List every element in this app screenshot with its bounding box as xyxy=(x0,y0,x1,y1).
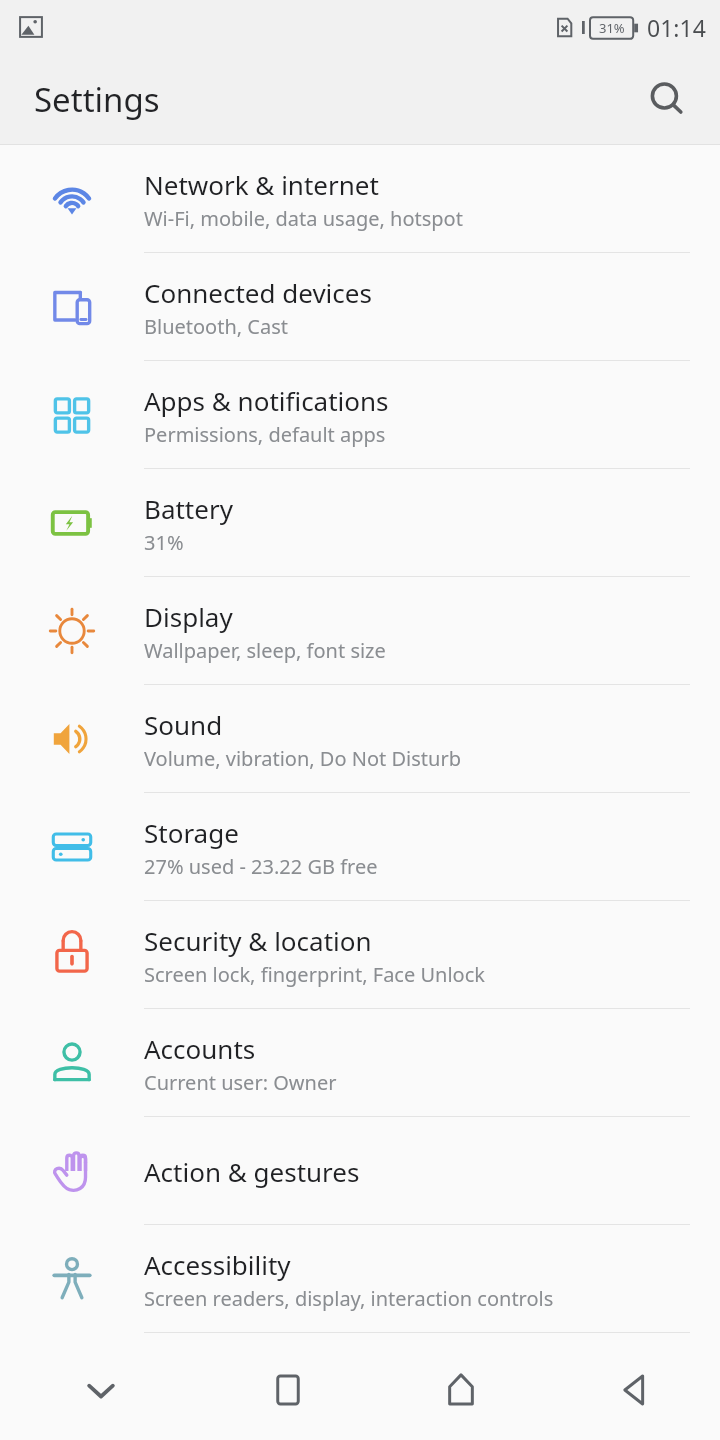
staticText: 31% xyxy=(144,529,184,556)
button[interactable]: Battery xyxy=(0,469,720,577)
staticText: 27% used - 23.22 GB free xyxy=(144,853,378,880)
staticText: Connected devices xyxy=(144,275,372,310)
staticText: Sound xyxy=(144,707,223,742)
staticText: Wi-Fi, mobile, data usage, hotspot xyxy=(144,205,463,232)
staticText: Display xyxy=(144,599,233,634)
staticText: Bluetooth, Cast xyxy=(144,313,289,340)
button[interactable]: Network & internet xyxy=(0,145,720,253)
staticText: Accessibility xyxy=(144,1247,291,1282)
staticText: Settings xyxy=(34,77,160,122)
staticText: 31% xyxy=(599,19,625,37)
staticText: Wallpaper, sleep, font size xyxy=(144,637,386,664)
button[interactable]: Back xyxy=(547,1340,720,1440)
staticText: Apps & notifications xyxy=(144,383,389,418)
staticText: Storage xyxy=(144,815,239,850)
staticText: 01:14 xyxy=(647,12,706,43)
button[interactable]: Sound xyxy=(0,685,720,793)
staticText: Network & internet xyxy=(144,167,379,202)
button[interactable]: Accessibility xyxy=(0,1225,720,1333)
button[interactable]: Recent apps xyxy=(201,1340,374,1440)
staticText: Current user: Owner xyxy=(144,1069,337,1096)
staticText: Permissions, default apps xyxy=(144,421,386,448)
button[interactable]: Storage xyxy=(0,793,720,901)
staticText: Action & gestures xyxy=(144,1154,360,1189)
button[interactable]: Connected devices xyxy=(0,253,720,361)
staticText: Screen lock, fingerprint, Face Unlock xyxy=(144,961,485,988)
staticText: Screen readers, display, interaction con… xyxy=(144,1285,554,1312)
button[interactable]: Search xyxy=(640,72,696,128)
button[interactable]: Accounts xyxy=(0,1009,720,1117)
button[interactable]: Security & location xyxy=(0,901,720,1009)
staticText: Battery xyxy=(144,491,233,526)
button[interactable]: Display xyxy=(0,577,720,685)
staticText: Security & location xyxy=(144,923,372,958)
button[interactable]: Hide keyboard xyxy=(0,1340,201,1440)
staticText: Accounts xyxy=(144,1031,256,1066)
button[interactable]: Home xyxy=(374,1340,547,1440)
button[interactable]: Apps & notifications xyxy=(0,361,720,469)
button[interactable]: Action & gestures xyxy=(0,1117,720,1225)
staticText: Volume, vibration, Do Not Disturb xyxy=(144,745,461,772)
